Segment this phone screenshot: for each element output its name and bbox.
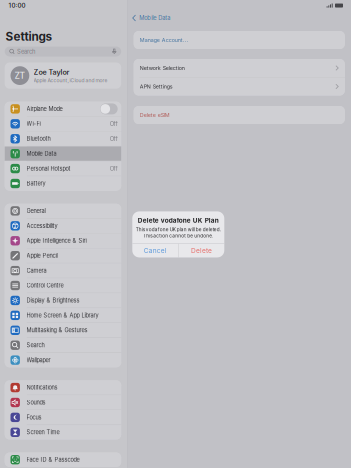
staticText: Manage Account... bbox=[140, 37, 189, 43]
button[interactable]: ZT bbox=[0, 62, 127, 89]
staticText: Apple Account, iCloud and more bbox=[33, 77, 107, 83]
button[interactable]: Manage Account... bbox=[134, 31, 345, 49]
staticText: Zoe Taylor bbox=[33, 68, 69, 76]
staticText: Wallpaper bbox=[26, 357, 50, 363]
staticText: General bbox=[26, 207, 45, 214]
button[interactable]: Focus bbox=[5, 410, 121, 425]
staticText: Notifications bbox=[26, 384, 57, 391]
button[interactable]: Delete bbox=[179, 244, 224, 257]
button[interactable]: Mobile Data bbox=[5, 146, 121, 161]
staticText: Search bbox=[26, 342, 44, 349]
staticText: Airplane Mode bbox=[26, 105, 62, 112]
button[interactable]: Apple Intelligence & Siri bbox=[5, 234, 121, 248]
staticText: Battery bbox=[26, 180, 45, 187]
staticText: Wi-Fi bbox=[26, 120, 40, 127]
staticText: APN Settings bbox=[140, 83, 173, 90]
button[interactable]: Home Screen & App Library bbox=[5, 308, 121, 323]
staticText: Settings bbox=[6, 29, 53, 44]
staticText: Network Selection bbox=[140, 65, 185, 71]
button[interactable]: Bluetooth bbox=[5, 131, 121, 146]
staticText: Home Screen & App Library bbox=[26, 312, 98, 319]
staticText: 10:00 bbox=[8, 2, 25, 9]
staticText: This vodafone UK plan will be deleted. bbox=[136, 227, 221, 232]
button[interactable]: Sounds bbox=[5, 395, 121, 410]
button[interactable]: Wallpaper bbox=[5, 353, 121, 367]
staticText: Sounds bbox=[26, 399, 45, 406]
staticText: Cancel bbox=[144, 247, 167, 254]
button[interactable]: Face ID & Passcode bbox=[5, 452, 121, 467]
button[interactable]: Display & Brightness bbox=[5, 293, 121, 308]
button[interactable]: Airplane Mode bbox=[5, 102, 121, 116]
staticText: Accessibility bbox=[26, 222, 57, 229]
button[interactable]: Control Centre bbox=[5, 278, 121, 293]
staticText: Mobile Data bbox=[139, 14, 170, 21]
staticText: Off bbox=[110, 120, 118, 127]
button[interactable]: Delete eSIM bbox=[134, 106, 345, 124]
staticText: Control Centre bbox=[26, 282, 63, 289]
staticText: Bluetooth bbox=[26, 135, 50, 142]
button[interactable]: Network Selection bbox=[134, 59, 345, 77]
button[interactable]: Search bbox=[5, 338, 121, 352]
button[interactable]: APN Settings bbox=[134, 77, 345, 95]
button[interactable]: Multitasking & Gestures bbox=[5, 323, 121, 337]
button[interactable]: Personal Hotspot bbox=[5, 161, 121, 176]
staticText: Apple Intelligence & Siri bbox=[26, 237, 86, 244]
button[interactable]: Apple Pencil bbox=[5, 248, 121, 263]
staticText: Multitasking & Gestures bbox=[26, 327, 87, 334]
button[interactable]: Accessibility bbox=[5, 219, 121, 233]
button[interactable]: Cancel bbox=[132, 244, 178, 257]
staticText: ZT bbox=[14, 70, 25, 81]
staticText: Focus bbox=[26, 414, 41, 421]
button[interactable]: Screen Time bbox=[5, 425, 121, 439]
button[interactable]: Wi-Fi bbox=[5, 117, 121, 131]
staticText: Delete eSIM bbox=[140, 112, 170, 118]
button[interactable]: General bbox=[5, 204, 121, 218]
staticText: Delete bbox=[191, 247, 212, 254]
staticText: Mobile Data bbox=[26, 150, 56, 157]
staticText: Camera bbox=[26, 267, 46, 274]
staticText: Search bbox=[17, 48, 35, 55]
staticText: Screen Time bbox=[26, 429, 59, 436]
staticText: Display & Brightness bbox=[26, 297, 79, 304]
button[interactable]: Battery bbox=[5, 176, 121, 191]
staticText: Personal Hotspot bbox=[26, 165, 70, 172]
staticText: Face ID & Passcode bbox=[26, 456, 79, 463]
staticText: Off bbox=[110, 165, 118, 172]
button[interactable]: Mobile Data bbox=[127, 11, 351, 25]
staticText: Delete vodafone UK Plan bbox=[138, 217, 219, 224]
button[interactable]: Notifications bbox=[5, 380, 121, 395]
staticText: Off bbox=[110, 135, 118, 142]
button[interactable]: Camera bbox=[5, 263, 121, 278]
staticText: Apple Pencil bbox=[26, 252, 57, 259]
staticText: This action cannot be undone. bbox=[143, 233, 213, 239]
